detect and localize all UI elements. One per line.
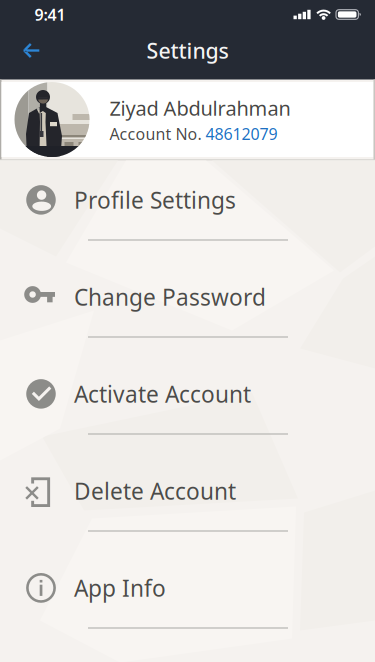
staticText: App Info — [74, 573, 166, 603]
staticText: Ziyad Abdulrahman — [109, 95, 290, 121]
staticText: 9:41 — [34, 4, 65, 25]
staticText: Activate Account — [74, 379, 251, 409]
staticText: Account No. — [109, 123, 201, 144]
button[interactable]: Ziyad Abdulrahman — [0, 79, 375, 159]
staticText: Profile Settings — [74, 185, 236, 215]
button[interactable]: Delete Account — [0, 451, 375, 548]
staticText: Settings — [146, 36, 228, 65]
button[interactable]: Profile Settings — [0, 160, 375, 257]
button[interactable]: App Info — [0, 548, 375, 645]
staticText: Delete Account — [74, 476, 236, 506]
staticText: 48612079 — [205, 123, 277, 144]
button[interactable]: Change Password — [0, 257, 375, 354]
staticText: Change Password — [74, 282, 266, 312]
button[interactable]: Back — [10, 30, 52, 70]
button[interactable]: Activate Account — [0, 354, 375, 451]
